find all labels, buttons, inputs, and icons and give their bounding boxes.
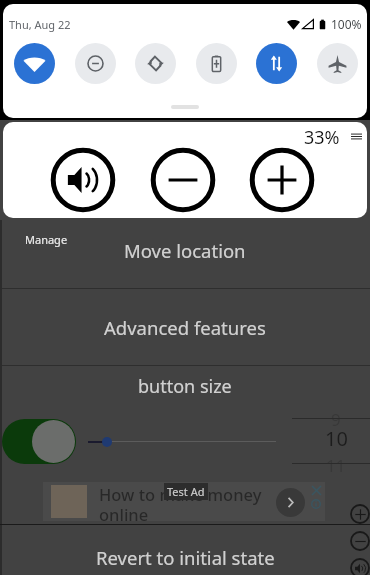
button[interactable]: button size (0, 366, 370, 406)
staticText: Thu, Aug 22 (9, 17, 71, 32)
staticText: Test Ad (167, 484, 205, 499)
button[interactable]: Toggle (2, 419, 76, 464)
button[interactable]: Do not disturb (75, 43, 116, 84)
button[interactable]: Airplane mode (317, 43, 358, 84)
button[interactable]: Open ad (276, 488, 305, 517)
button[interactable]: Move location (0, 216, 370, 285)
button[interactable]: Mobile data (256, 43, 297, 84)
staticText: 9 (331, 408, 341, 431)
staticText: 11 (326, 454, 346, 477)
button[interactable]: Number picker (292, 404, 370, 476)
staticText: button size (138, 374, 232, 399)
staticText: Revert to initial state (96, 545, 275, 570)
staticText: Manage (25, 232, 68, 247)
button[interactable]: How to make money (43, 482, 325, 521)
button[interactable]: Volume up (350, 504, 370, 524)
button[interactable]: Wi-Fi (14, 43, 55, 84)
button[interactable]: Mute (350, 558, 370, 575)
button[interactable]: Volume (50, 147, 116, 213)
button[interactable]: Battery saver (196, 43, 237, 84)
staticText: Advanced features (104, 315, 266, 340)
button[interactable]: Advanced features (0, 289, 370, 365)
button[interactable]: Auto rotate (135, 43, 176, 84)
button[interactable]: Volume down (150, 147, 216, 213)
button[interactable]: Slider (102, 437, 112, 447)
staticText: online (99, 503, 149, 525)
staticText: 33% (304, 125, 340, 150)
staticText: 100% (331, 16, 362, 32)
button[interactable]: Volume up (249, 147, 315, 213)
staticText: Move location (124, 238, 246, 263)
button[interactable]: Volume down (350, 531, 370, 551)
button[interactable]: Ad info (309, 497, 323, 511)
staticText: How to make money (99, 483, 262, 505)
button[interactable]: Close ad (309, 483, 323, 497)
staticText: 10 (325, 425, 348, 452)
